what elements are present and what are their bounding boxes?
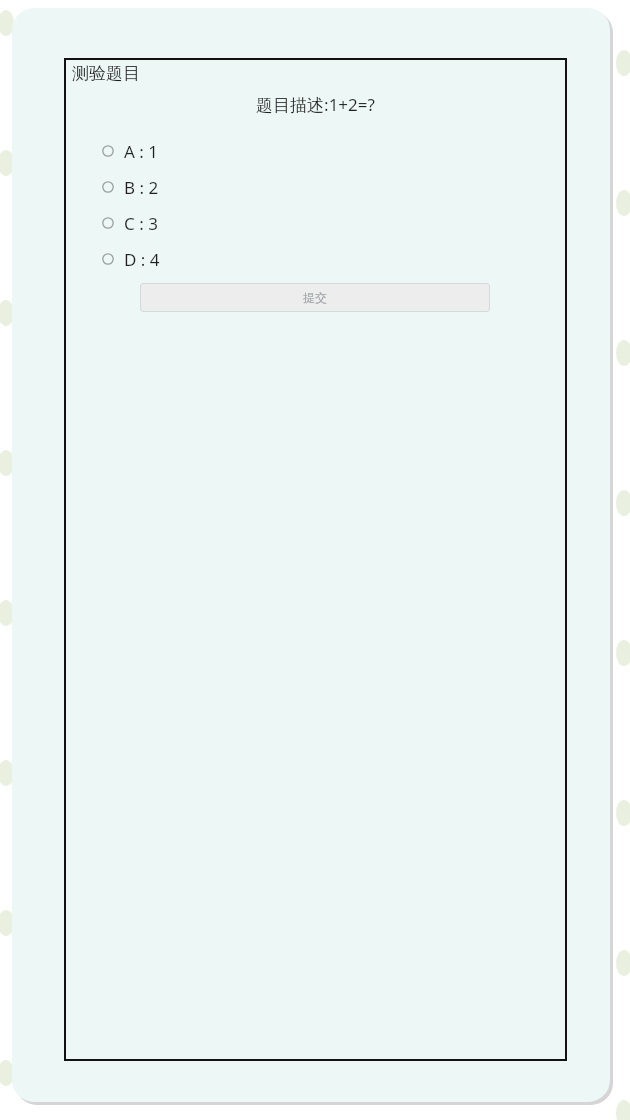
- other: Select D : 4: [102, 253, 114, 265]
- button[interactable]: Select B : 2: [64, 169, 567, 205]
- staticText: B : 2: [124, 176, 159, 199]
- button[interactable]: Select C : 3: [64, 205, 567, 241]
- other: Select A : 1: [102, 145, 114, 157]
- staticText: D : 4: [124, 248, 160, 271]
- button[interactable]: 提交: [140, 283, 490, 312]
- staticText: 题目描述:1+2=?: [64, 93, 567, 116]
- other: Select C : 3: [102, 217, 114, 229]
- staticText: A : 1: [124, 140, 158, 163]
- staticText: C : 3: [124, 212, 158, 235]
- staticText: 提交: [303, 290, 327, 305]
- staticText: 测验题目: [72, 63, 140, 84]
- button[interactable]: Select A : 1: [64, 133, 567, 169]
- other: Select B : 2: [102, 181, 114, 193]
- button[interactable]: Select D : 4: [64, 241, 567, 277]
